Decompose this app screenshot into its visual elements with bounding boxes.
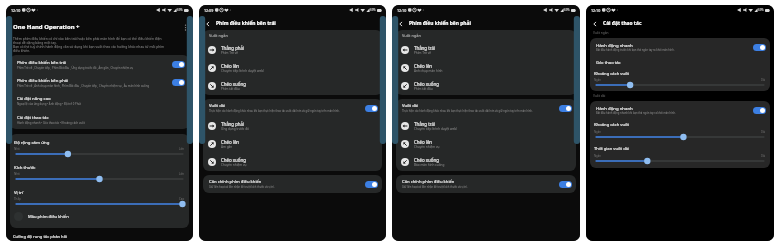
staticText: Thẳng trái bbox=[414, 121, 436, 127]
staticText: Ngoại lệ của ứng dụng • Ảnh động • Độ tr… bbox=[17, 102, 82, 106]
staticText: 12:10 bbox=[397, 8, 407, 13]
button[interactable]: Toggle bbox=[172, 61, 185, 68]
staticText: Góc thao tác bbox=[596, 60, 621, 66]
button[interactable]: Căn chỉnh phím điều khiển bbox=[396, 175, 576, 193]
staticText: Màu phím điều khiển bbox=[28, 214, 69, 220]
button[interactable]: Direction bbox=[396, 41, 576, 59]
staticText: Thêm phím điều khiển có chỉ vào bên trái… bbox=[13, 36, 162, 40]
button[interactable]: Direction bbox=[396, 135, 576, 153]
button[interactable]: Slider bbox=[594, 82, 766, 88]
button[interactable]: Direction bbox=[396, 77, 576, 95]
button[interactable]: Toggle bbox=[172, 79, 185, 86]
button[interactable]: Direction bbox=[401, 158, 409, 166]
button[interactable]: Direction bbox=[401, 46, 409, 54]
button[interactable]: Cài đặt thao tác bbox=[10, 110, 189, 129]
staticText: 12:09 bbox=[204, 8, 214, 13]
button[interactable]: Căn chỉnh phím điều khiển bbox=[203, 175, 382, 193]
button[interactable]: Toggle bbox=[559, 105, 572, 112]
button[interactable]: Direction bbox=[208, 158, 216, 166]
staticText: Chéo lên bbox=[221, 63, 240, 69]
staticText: Hành động nhanh bbox=[596, 42, 633, 48]
button[interactable]: Toggle bbox=[753, 44, 766, 51]
staticText: 69% bbox=[758, 8, 764, 12]
staticText: Vuốt dài bbox=[593, 94, 606, 98]
button[interactable]: Vuốt dài bbox=[203, 99, 382, 117]
button[interactable]: Direction bbox=[208, 64, 216, 72]
staticText: Chuyển nhiệm vụ bbox=[221, 163, 247, 167]
staticText: Phím tắt đầu bbox=[221, 87, 240, 91]
button[interactable]: Direction bbox=[208, 140, 216, 148]
staticText: Chéo xuống bbox=[221, 81, 246, 87]
button[interactable]: Góc thao tác bbox=[590, 56, 770, 70]
staticText: Cài đặt thao tác bbox=[603, 20, 642, 27]
staticText: Phím Trở về bbox=[414, 51, 432, 55]
staticText: Kích thước bbox=[14, 164, 36, 170]
staticText: Thẳng phải bbox=[221, 121, 245, 127]
button[interactable]: Hành động nhanh bbox=[590, 38, 770, 56]
button[interactable]: Direction bbox=[401, 122, 409, 130]
button[interactable]: Vuốt dài bbox=[396, 99, 576, 117]
staticText: Cài đặt thao tác bbox=[17, 114, 49, 120]
button[interactable]: Toggle bbox=[365, 105, 378, 112]
staticText: Ngắn bbox=[594, 154, 601, 158]
staticText: Khoảng cách vuốt bbox=[594, 71, 630, 77]
button[interactable]: Slider bbox=[14, 201, 185, 207]
button[interactable]: Direction bbox=[401, 140, 409, 148]
button[interactable]: Direction bbox=[396, 59, 576, 77]
staticText: Lớn bbox=[179, 172, 185, 176]
button[interactable]: Direction bbox=[203, 153, 382, 171]
staticText: Hành động nhanh bbox=[596, 105, 633, 111]
button[interactable]: Toggle bbox=[559, 181, 572, 188]
button[interactable]: Back bbox=[396, 19, 405, 28]
staticText: 69% bbox=[564, 8, 570, 12]
staticText: Vuốt dài bbox=[209, 103, 226, 109]
button[interactable]: Slider bbox=[594, 158, 766, 164]
staticText: Ngắn bbox=[594, 130, 601, 134]
button[interactable]: Direction bbox=[203, 41, 382, 59]
button[interactable]: Direction bbox=[396, 153, 576, 171]
button[interactable]: Direction bbox=[208, 82, 216, 90]
button[interactable]: Direction bbox=[401, 64, 409, 72]
button[interactable]: Direction bbox=[203, 59, 382, 77]
staticText: Chuyển tiếp (trình duyệt web) bbox=[221, 69, 264, 73]
staticText: Thực hiện các hành động khác nhau khi bạ… bbox=[209, 109, 340, 113]
staticText: Phím điều khiển bên phải bbox=[17, 77, 69, 83]
button[interactable]: Direction bbox=[203, 117, 382, 135]
button[interactable]: Slider bbox=[594, 134, 766, 140]
staticText: Thấp bbox=[14, 197, 21, 201]
button[interactable]: Direction bbox=[203, 77, 382, 95]
staticText: Phím điều khiển bên trái bbox=[17, 59, 67, 65]
button[interactable]: Toggle bbox=[753, 107, 766, 114]
button[interactable]: Màu phím điều khiển bbox=[14, 212, 185, 221]
button[interactable]: Direction bbox=[203, 135, 382, 153]
button[interactable]: Cài đặt nâng cao bbox=[10, 91, 189, 110]
staticText: Hành động nhanh • Góc thao tác • Khoảng … bbox=[17, 121, 85, 125]
button[interactable]: Phím điều khiển bên trái bbox=[10, 55, 189, 74]
button[interactable]: Direction bbox=[208, 122, 216, 130]
staticText: Căn chỉnh phím điều khiển bbox=[209, 179, 262, 185]
staticText: Phím điều khiển bên phải bbox=[409, 20, 471, 27]
button[interactable]: Direction bbox=[401, 82, 409, 90]
staticText: Vuốt ngắn bbox=[209, 33, 228, 38]
button[interactable]: Slider bbox=[14, 176, 185, 182]
button[interactable]: Direction bbox=[208, 46, 216, 54]
staticText: Thẳng phải bbox=[221, 45, 245, 51]
staticText: Giữ liên hoạt và liên nhận để trượt kích… bbox=[209, 185, 275, 189]
staticText: Phím điều khiển bên trái bbox=[216, 20, 276, 27]
staticText: Bắt đầu hành động trước khi bạn thả ngón… bbox=[596, 48, 675, 52]
staticText: Ứng dụng trước đó bbox=[221, 127, 249, 131]
button[interactable]: Direction bbox=[396, 117, 576, 135]
staticText: Ảnh chụp màn hình bbox=[414, 69, 443, 73]
staticText: Thực hiện các hành động khác nhau khi bạ… bbox=[402, 109, 533, 113]
button[interactable]: Phím điều khiển bên phải bbox=[10, 74, 189, 91]
button[interactable]: Back bbox=[203, 19, 212, 28]
button[interactable]: More options bbox=[182, 23, 189, 32]
button[interactable]: Hành động nhanh bbox=[590, 101, 770, 119]
button[interactable]: Toggle bbox=[365, 181, 378, 188]
staticText: 12:10 bbox=[11, 8, 21, 13]
button[interactable]: Slider bbox=[14, 151, 185, 157]
staticText: Dài bbox=[761, 130, 766, 134]
button[interactable]: Back bbox=[590, 19, 599, 28]
staticText: Chéo lên bbox=[414, 63, 433, 69]
staticText: Vị trí bbox=[14, 189, 24, 195]
